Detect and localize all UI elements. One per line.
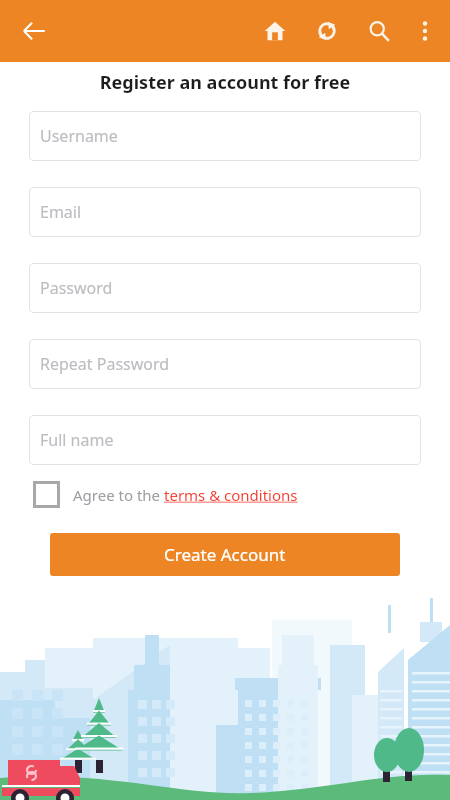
button[interactable]: Full name bbox=[29, 415, 421, 465]
staticText: Full name bbox=[40, 429, 114, 451]
staticText: Username bbox=[40, 125, 118, 147]
button[interactable]: Repeat Password bbox=[29, 339, 421, 389]
button[interactable]: Username bbox=[29, 111, 421, 161]
staticText: Email bbox=[40, 201, 82, 223]
staticText: Agree to the bbox=[73, 485, 164, 505]
staticText: Create Account bbox=[164, 543, 286, 566]
button[interactable]: Refresh bbox=[310, 14, 344, 48]
staticText: Repeat Password bbox=[40, 353, 170, 375]
staticText: Register an account for free bbox=[0, 70, 450, 95]
staticText: Password bbox=[40, 277, 113, 299]
button[interactable]: Home bbox=[258, 14, 292, 48]
button[interactable]: Search bbox=[362, 14, 396, 48]
button[interactable]: Create Account bbox=[50, 533, 400, 576]
button[interactable]: More options bbox=[408, 14, 442, 48]
button[interactable]: terms & conditions bbox=[164, 485, 298, 505]
button[interactable]: Agree to the bbox=[33, 481, 298, 508]
button[interactable]: Back bbox=[14, 11, 54, 51]
button[interactable]: Email bbox=[29, 187, 421, 237]
button[interactable]: Password bbox=[29, 263, 421, 313]
